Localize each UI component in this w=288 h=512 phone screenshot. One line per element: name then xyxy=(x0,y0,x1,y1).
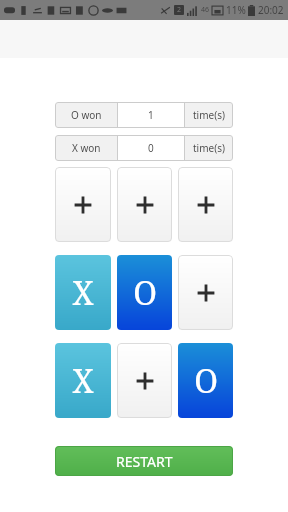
button[interactable]: Empty cell, tap to play xyxy=(55,167,111,242)
staticText: 2 xyxy=(177,5,182,15)
staticText: 0 xyxy=(148,141,154,155)
button[interactable]: Empty cell, tap to play xyxy=(117,343,172,418)
staticText: O xyxy=(194,359,218,403)
staticText: RESTART xyxy=(116,452,173,471)
staticText: time(s) xyxy=(193,141,225,155)
button[interactable]: Empty cell, tap to play xyxy=(178,167,233,242)
staticText: O won xyxy=(71,108,102,122)
staticText: 20:02 xyxy=(258,3,284,17)
button[interactable]: RESTART xyxy=(55,446,233,476)
staticText: X xyxy=(72,359,94,403)
button[interactable]: Cell O xyxy=(117,255,172,330)
staticText: X won xyxy=(72,141,101,155)
staticText: 11% xyxy=(226,3,246,17)
button[interactable]: Cell O xyxy=(178,343,233,418)
staticText: X xyxy=(72,271,94,315)
staticText: O xyxy=(133,271,157,315)
button[interactable]: Empty cell, tap to play xyxy=(117,167,172,242)
staticText: 46 xyxy=(201,5,210,15)
staticText: time(s) xyxy=(193,108,225,122)
button[interactable]: Empty cell, tap to play xyxy=(178,255,233,330)
button[interactable]: Cell X xyxy=(55,255,111,330)
staticText: 1 xyxy=(148,108,154,122)
button[interactable]: Cell X xyxy=(55,343,111,418)
